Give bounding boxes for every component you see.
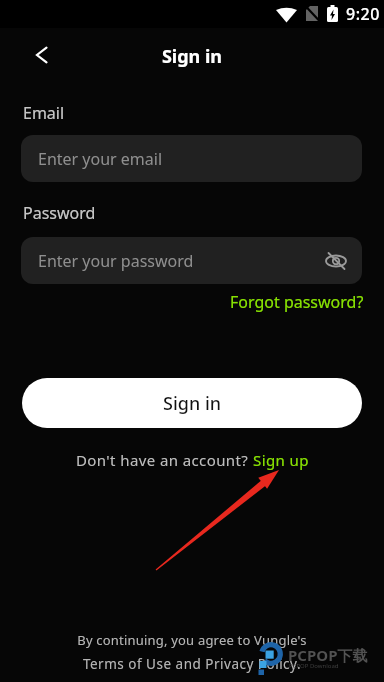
staticText: Sign in [0, 44, 384, 69]
staticText: By continuing, you agree to Vungle's [0, 631, 384, 649]
staticText: PCPOP下载 [288, 645, 368, 665]
staticText: PCPOP Download [289, 662, 339, 670]
staticText: Don't have an account? [76, 450, 253, 470]
staticText: Enter your password [38, 250, 194, 272]
button[interactable]: Forgot password? [230, 291, 364, 313]
button[interactable]: Enter your password [21, 237, 362, 284]
button[interactable]: Sign up [253, 450, 309, 470]
staticText: Terms of Use and Privacy Policy. [0, 655, 384, 673]
button[interactable] [324, 249, 348, 273]
button[interactable]: Enter your email [21, 135, 362, 182]
button[interactable]: Sign in [22, 378, 362, 428]
staticText: Sign in [163, 391, 222, 416]
staticText: 9:20 [346, 3, 380, 25]
button[interactable] [28, 41, 56, 69]
staticText: Email [23, 102, 65, 124]
staticText: Password [23, 202, 96, 224]
staticText: Enter your email [38, 148, 163, 170]
